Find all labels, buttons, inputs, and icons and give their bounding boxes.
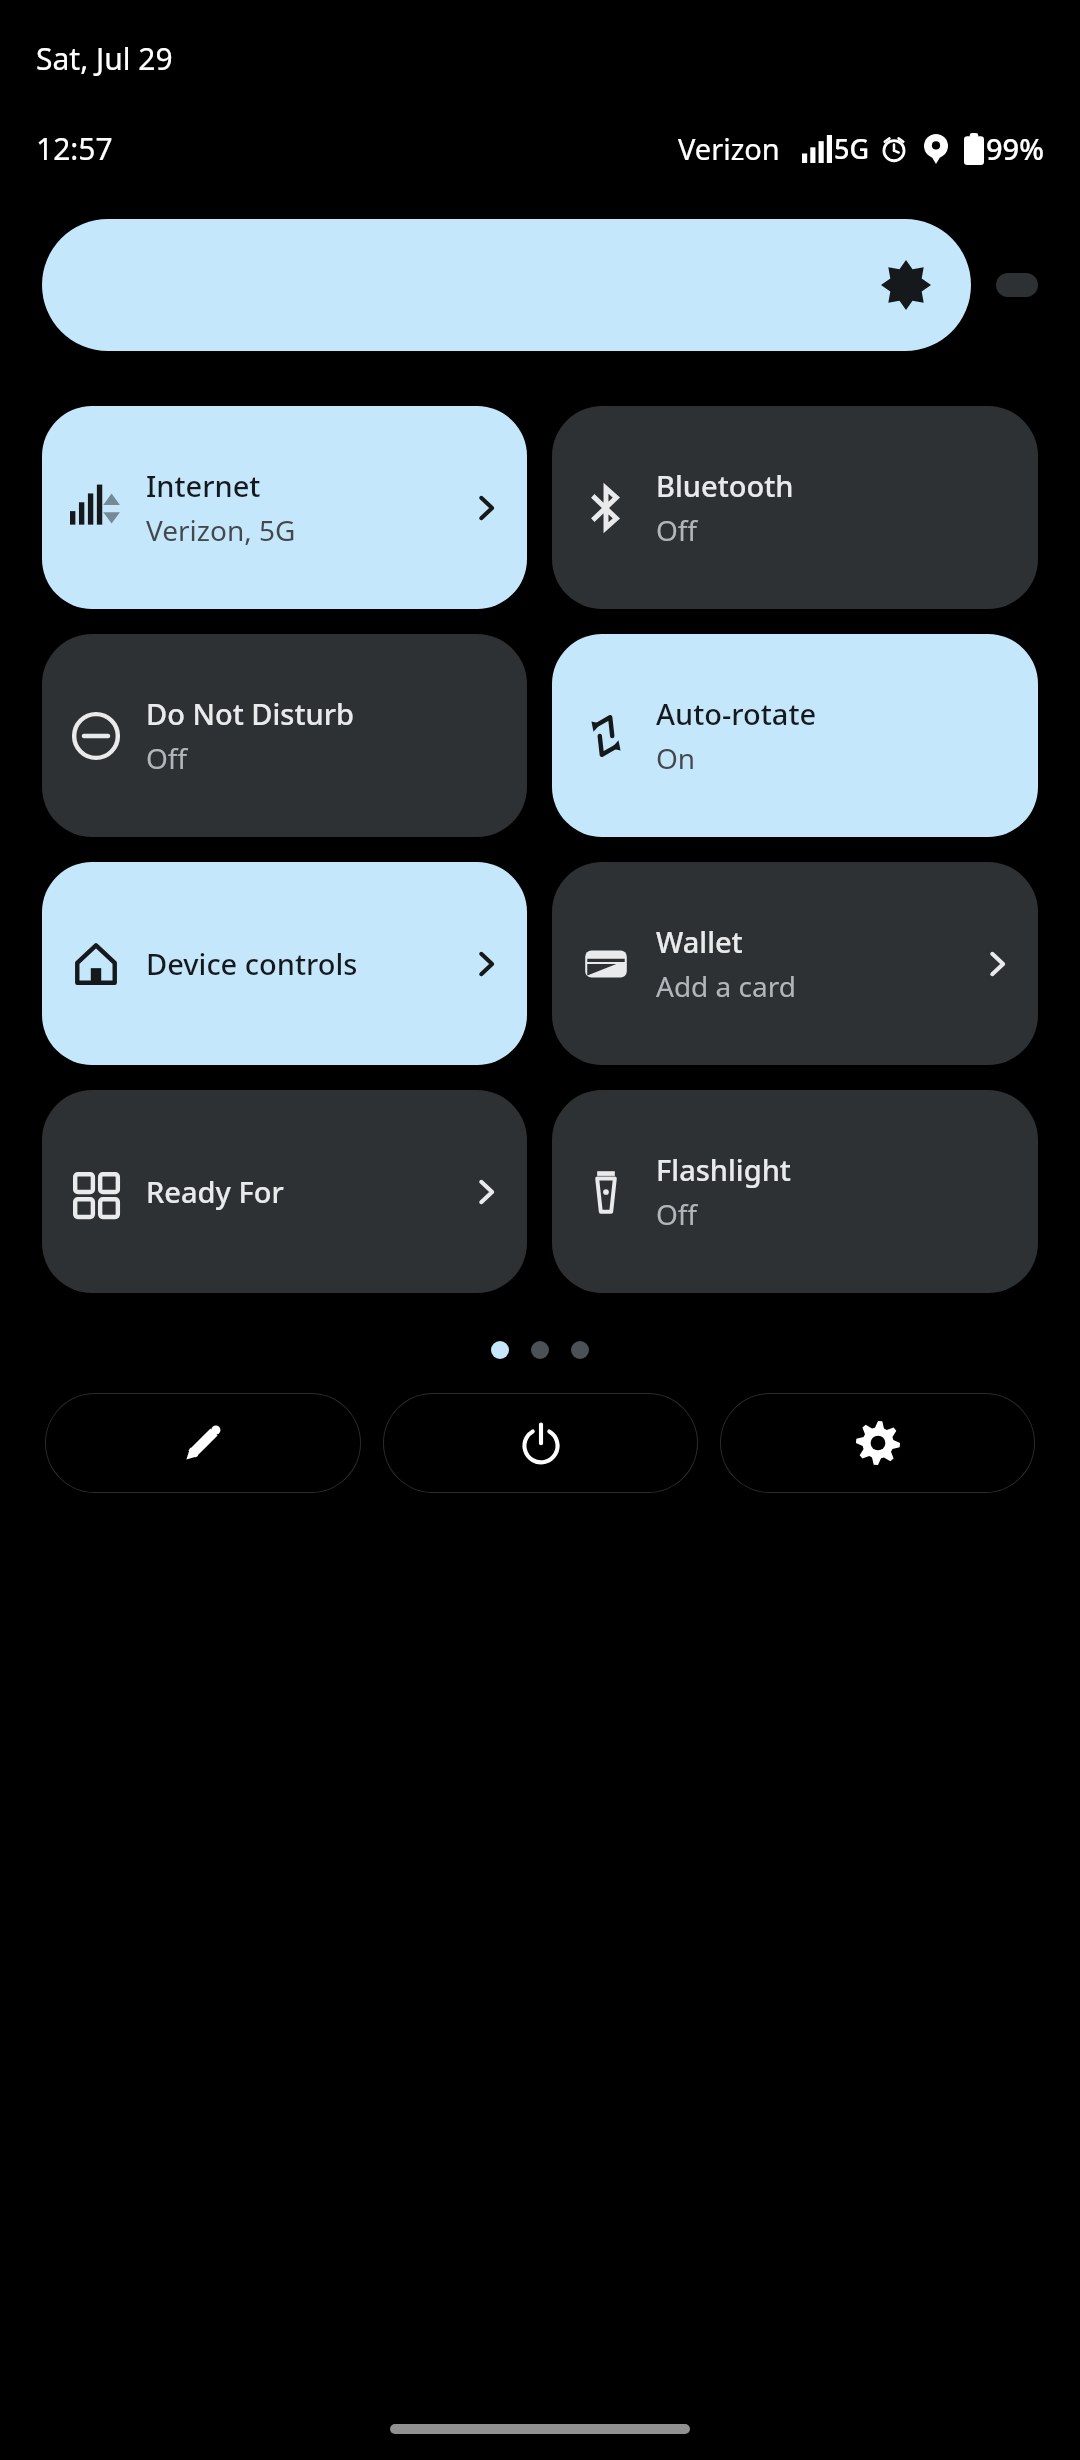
staticText: 5G	[834, 130, 870, 167]
button[interactable]: Auto-rotate	[552, 634, 1038, 837]
button[interactable]: Bluetooth	[552, 406, 1038, 609]
staticText: Off	[656, 1195, 698, 1233]
button[interactable]: Power	[383, 1393, 698, 1493]
staticText: Flashlight	[656, 1150, 791, 1189]
staticText: Verizon	[678, 129, 780, 168]
staticText: Do Not Disturb	[146, 694, 354, 733]
button[interactable]: Edit tiles	[45, 1393, 361, 1493]
staticText: Internet	[146, 466, 261, 505]
staticText: 99%	[986, 129, 1044, 168]
button[interactable]: Wallet	[552, 862, 1038, 1065]
staticText: Wallet	[656, 922, 743, 961]
staticText: Off	[146, 739, 188, 777]
staticText: Device controls	[146, 944, 358, 983]
button[interactable]: Brightness	[42, 219, 971, 351]
staticText: Verizon, 5G	[146, 511, 296, 549]
button[interactable]: Do Not Disturb	[42, 634, 527, 837]
staticText: Sat, Jul 29	[36, 38, 173, 79]
staticText: 12:57	[36, 128, 113, 169]
staticText: Ready For	[146, 1172, 284, 1211]
button[interactable]: Device controls	[42, 862, 527, 1065]
button[interactable]: Internet	[42, 406, 527, 609]
staticText: Bluetooth	[656, 466, 794, 505]
staticText: Add a card	[656, 967, 796, 1005]
button[interactable]: Flashlight	[552, 1090, 1038, 1293]
staticText: Off	[656, 511, 698, 549]
staticText: Auto-rotate	[656, 694, 817, 733]
button[interactable]: Ready For	[42, 1090, 527, 1293]
button[interactable]: Settings	[720, 1393, 1035, 1493]
staticText: On	[656, 739, 696, 777]
